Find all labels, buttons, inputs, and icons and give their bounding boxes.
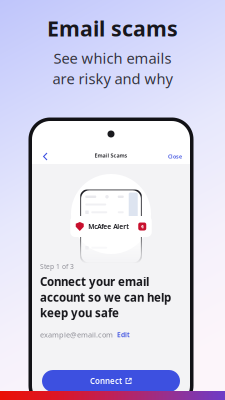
staticText: McAfee Alert bbox=[88, 222, 129, 231]
staticText: Edit bbox=[117, 330, 130, 339]
button[interactable]: Connect bbox=[42, 370, 180, 392]
staticText: Email Scams bbox=[94, 152, 127, 159]
staticText: 4 bbox=[141, 223, 144, 230]
staticText: Close bbox=[168, 153, 182, 160]
staticText: are risky and why bbox=[52, 69, 172, 88]
staticText: example@email.com bbox=[40, 330, 113, 340]
staticText: See which emails bbox=[53, 48, 171, 68]
staticText: Email scams bbox=[47, 14, 178, 42]
staticText: Connect your email account so we can hel… bbox=[40, 274, 171, 321]
staticText: Step 1 of 3 bbox=[40, 262, 74, 271]
staticText: Connect bbox=[90, 376, 122, 386]
button[interactable]: Edit bbox=[113, 330, 130, 339]
button[interactable]: Back bbox=[40, 149, 51, 163]
button[interactable]: Close bbox=[168, 149, 182, 163]
